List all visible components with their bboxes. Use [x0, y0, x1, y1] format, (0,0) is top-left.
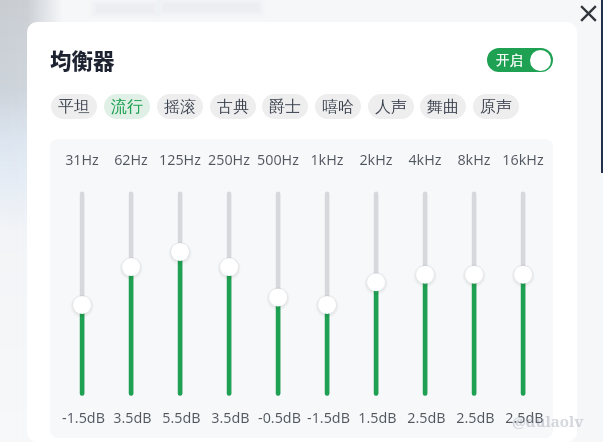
staticText: 3.5dB [113, 408, 152, 427]
staticText: 原声 [480, 97, 512, 117]
button[interactable]: 平坦 [51, 94, 97, 119]
staticText: 舞曲 [427, 97, 459, 117]
button[interactable]: 原声 [473, 94, 519, 119]
button[interactable]: 嘻哈 [315, 94, 361, 119]
staticText: 平坦 [58, 97, 90, 117]
staticText: 开启 [496, 52, 523, 69]
staticText: 古典 [217, 97, 249, 117]
staticText: 人声 [375, 97, 407, 117]
staticText: 1.5dB [358, 408, 397, 427]
staticText: 16kHz [502, 150, 544, 169]
staticText: 31Hz [65, 150, 99, 169]
staticText: 1kHz [310, 150, 344, 169]
staticText: 5.5dB [162, 408, 201, 427]
button[interactable]: 人声 [368, 94, 414, 119]
staticText: 2.5dB [505, 408, 544, 427]
staticText: 62Hz [114, 150, 148, 169]
button[interactable]: 开启 [487, 48, 553, 72]
button[interactable]: 古典 [210, 94, 256, 119]
button[interactable]: 摇滚 [157, 94, 203, 119]
staticText: 500Hz [257, 150, 299, 169]
staticText: @dulaolv [512, 411, 584, 431]
staticText: 250Hz [208, 150, 250, 169]
staticText: 摇滚 [164, 97, 196, 117]
staticText: -0.5dB [258, 408, 301, 427]
staticText: 2kHz [359, 150, 393, 169]
staticText: 2.5dB [456, 408, 495, 427]
staticText: 125Hz [159, 150, 201, 169]
staticText: -1.5dB [307, 408, 350, 427]
button[interactable]: 爵士 [262, 94, 308, 119]
button[interactable]: Close [578, 3, 599, 24]
staticText: 4kHz [408, 150, 442, 169]
staticText: 8kHz [457, 150, 491, 169]
button[interactable]: 舞曲 [420, 94, 466, 119]
staticText: 流行 [111, 97, 143, 117]
staticText: 爵士 [269, 97, 301, 117]
button[interactable]: 流行 [104, 94, 150, 119]
staticText: 3.5dB [211, 408, 250, 427]
staticText: 2.5dB [407, 408, 446, 427]
staticText: 均衡器 [50, 44, 115, 75]
staticText: -1.5dB [62, 408, 105, 427]
staticText: 嘻哈 [322, 97, 354, 117]
